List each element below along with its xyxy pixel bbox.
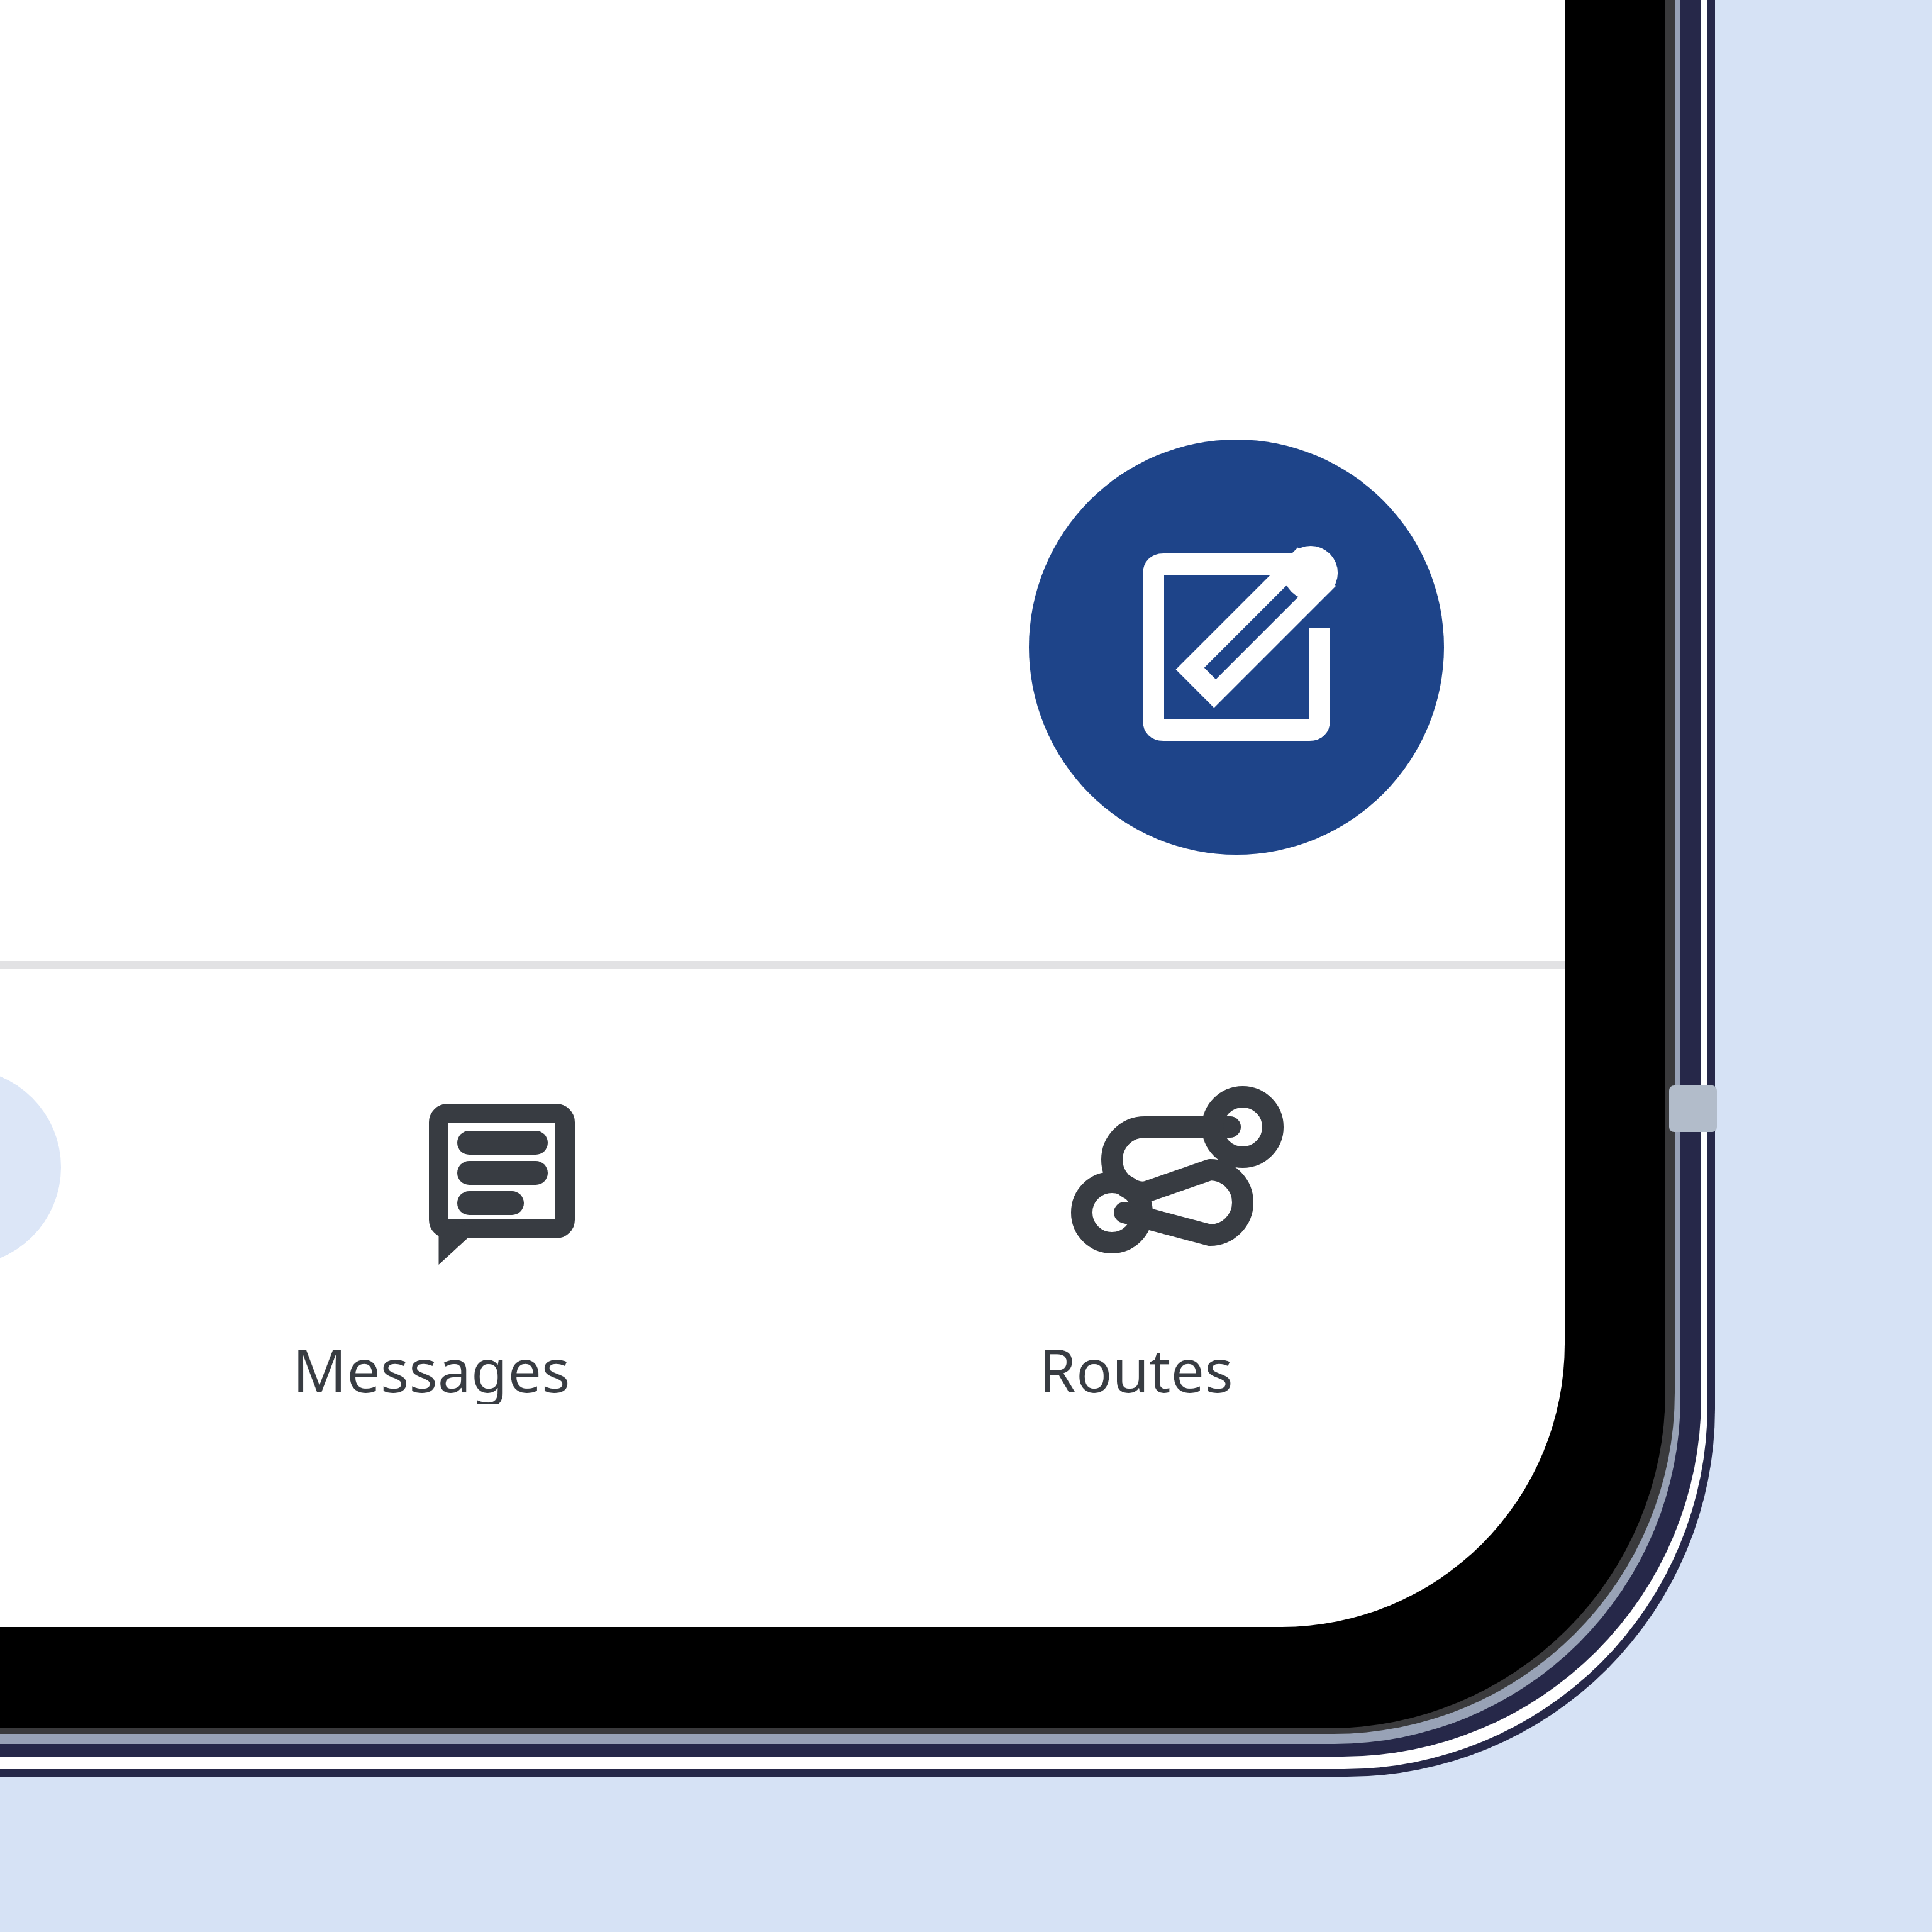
staticText: Routes (1039, 1328, 1233, 1404)
staticText: Messages (292, 1328, 570, 1404)
button[interactable]: Messages tab (0, 1006, 497, 1434)
button[interactable]: Compose new message (1029, 440, 1444, 855)
button[interactable]: Routes tab (874, 1006, 1478, 1434)
